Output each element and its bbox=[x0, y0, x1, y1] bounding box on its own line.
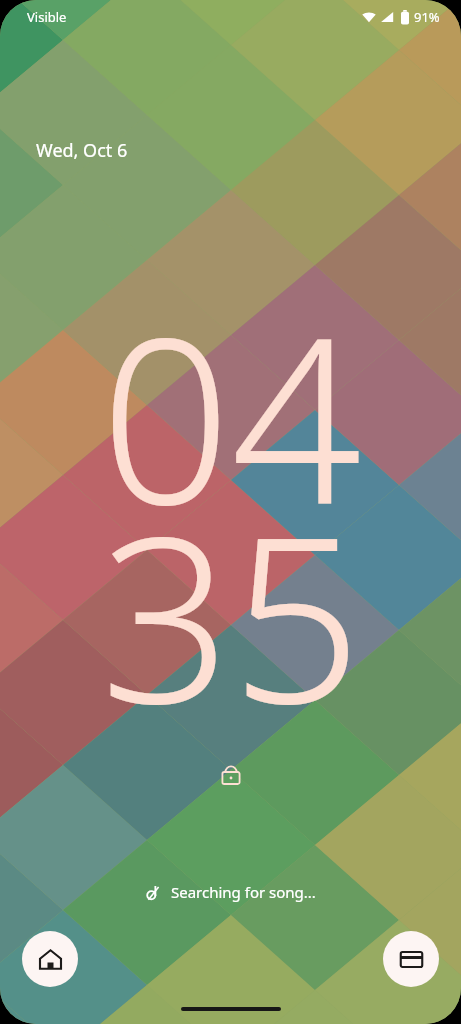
staticText: 04 35 bbox=[100, 259, 362, 770]
staticText: Searching for song... bbox=[171, 882, 316, 902]
button[interactable]: Home bbox=[22, 931, 78, 987]
staticText: Wed, Oct 6 bbox=[36, 138, 128, 163]
staticText: 91% bbox=[414, 8, 440, 26]
staticText: Visible bbox=[27, 8, 67, 26]
button[interactable]: Wallet bbox=[383, 931, 439, 987]
